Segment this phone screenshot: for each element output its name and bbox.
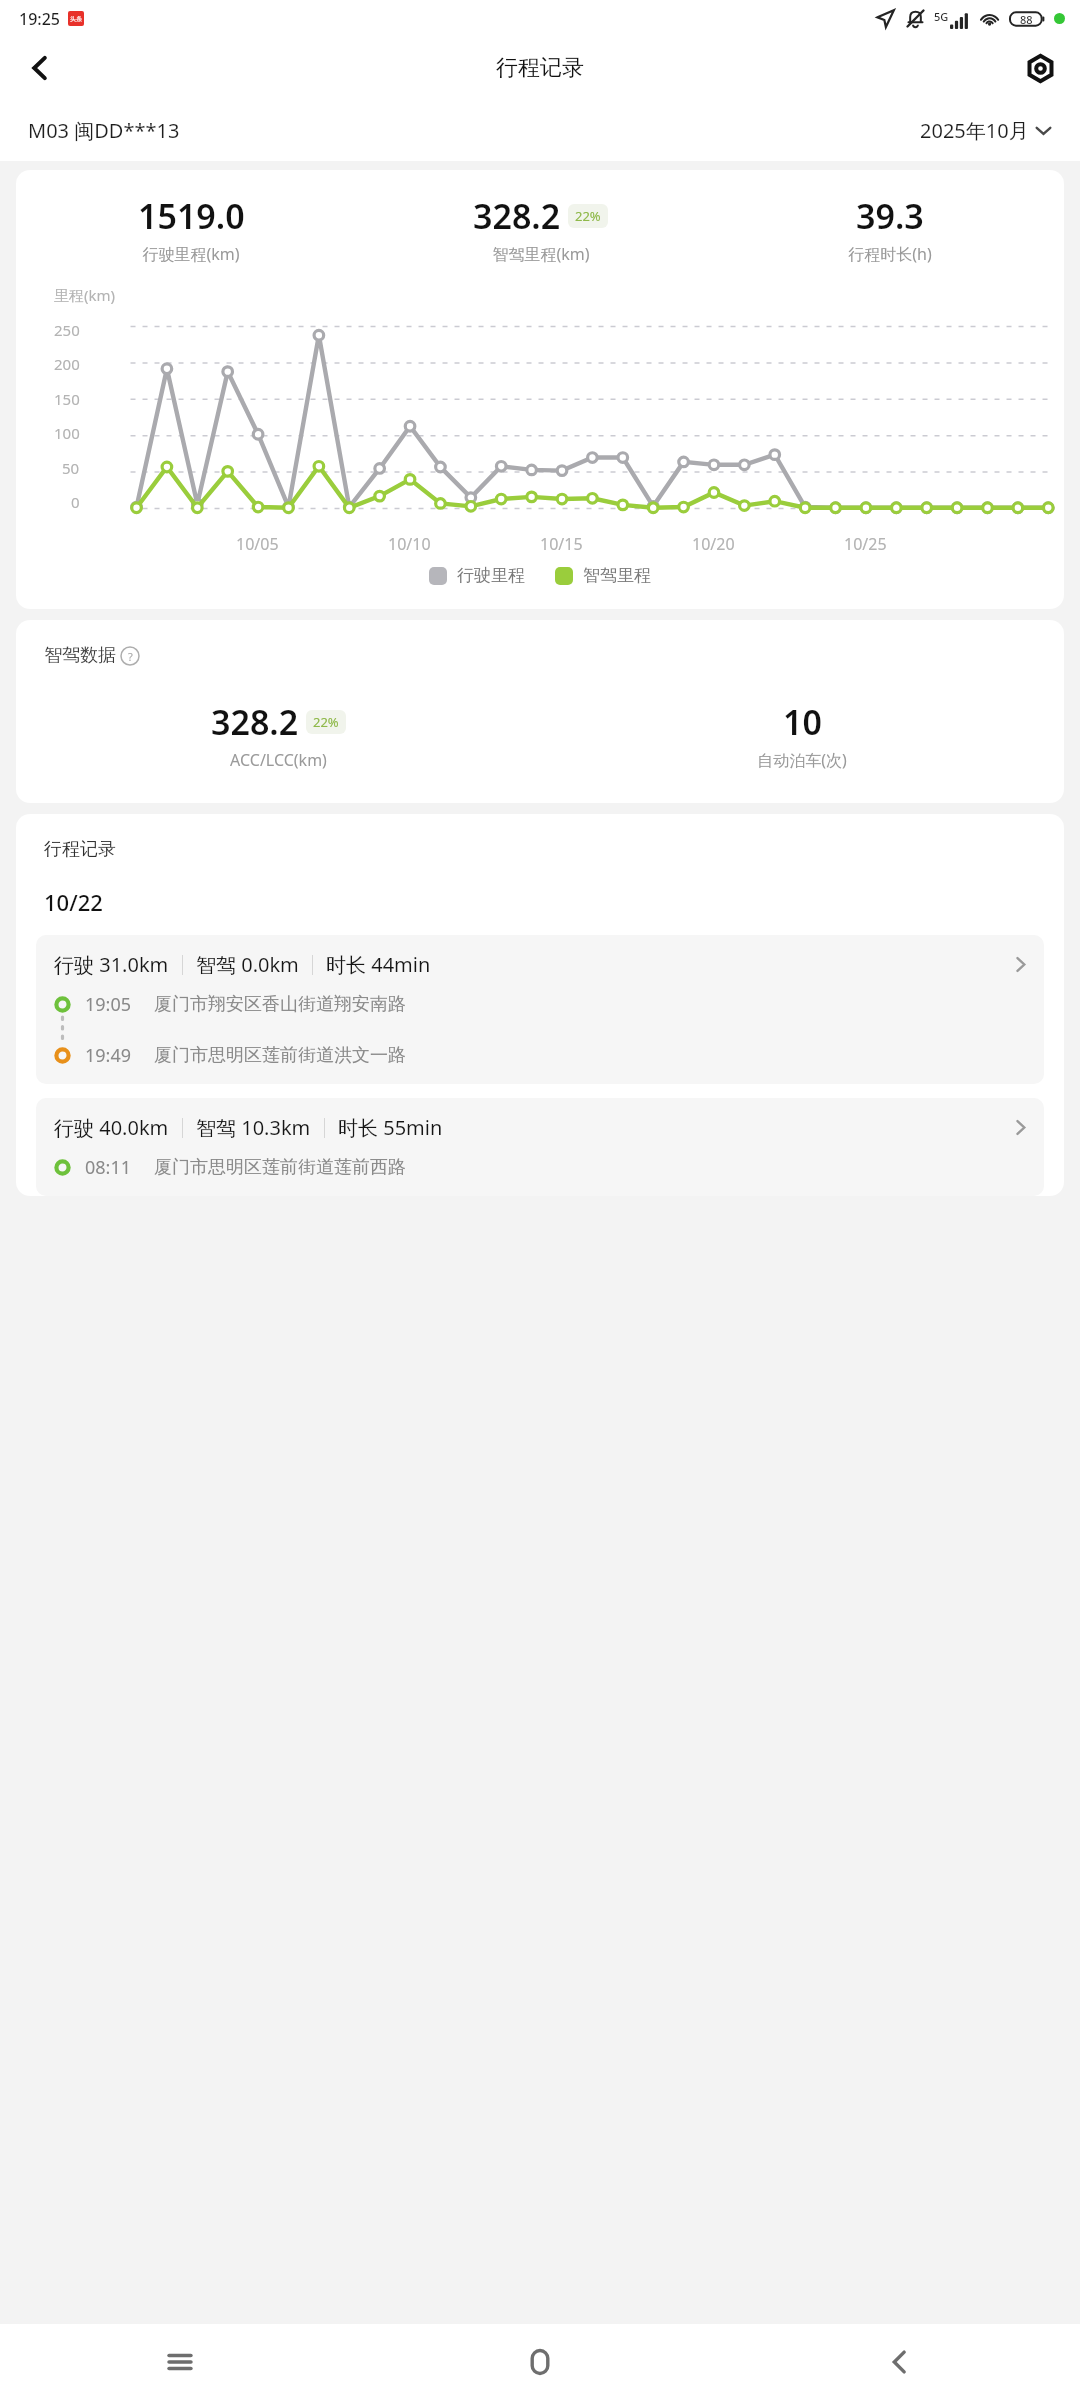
staticText: 08:11 [85,1155,132,1180]
staticText: 行驶 40.0km [54,1114,169,1141]
staticText: 行程记录 [44,838,116,861]
button[interactable]: Recent apps [0,2324,360,2400]
staticText: 22% [575,207,601,225]
staticText: 10/05 [236,533,279,555]
staticText: 50 [62,458,80,478]
button[interactable]: 行驶 31.0km [36,935,1044,1084]
staticText: 厦门市翔安区香山街道翔安南路 [154,993,406,1016]
staticText: 10/22 [44,887,103,917]
staticText: 5G [934,9,949,24]
staticText: 行程时长(h) [848,243,932,265]
staticText: 智驾里程 [583,565,651,586]
staticText: 0 [71,492,80,512]
staticText: 行驶里程 [457,565,525,586]
staticText: 10 [783,699,822,745]
staticText: M03 闽DD***13 [28,117,180,144]
staticText: 328.2 [211,699,299,745]
staticText: 19:05 [85,992,132,1017]
staticText: ACC/LCC(km) [230,749,327,771]
staticText: 厦门市思明区莲前街道莲前西路 [154,1156,406,1179]
staticText: 时长 55min [338,1114,443,1141]
staticText: 里程(km) [54,285,116,305]
staticText: 328.2 [473,193,561,239]
staticText: 智驾里程(km) [492,243,590,265]
staticText: 1519.0 [138,193,245,239]
staticText: 10/25 [844,533,887,555]
button[interactable]: Back [720,2324,1080,2400]
staticText: 10/20 [692,533,735,555]
staticText: 250 [54,320,80,340]
staticText: 10/10 [388,533,431,555]
staticText: 2025年10月 [920,117,1029,144]
staticText: 88 [1020,12,1033,27]
button[interactable]: 行驶 40.0km [36,1098,1044,1196]
button[interactable]: Home [360,2324,720,2400]
staticText: 时长 44min [326,951,431,978]
staticText: 150 [54,389,80,409]
staticText: 头条 [70,15,82,23]
staticText: 行驶里程(km) [142,243,240,265]
staticText: 19:25 [19,8,60,30]
staticText: ? [128,649,133,664]
staticText: 100 [54,423,80,443]
staticText: 行程记录 [496,54,584,82]
button[interactable]: Back [14,42,66,94]
staticText: 智驾 0.0km [196,951,299,978]
staticText: 19:49 [85,1043,132,1068]
button[interactable]: Settings [1014,42,1066,94]
staticText: 39.3 [856,193,924,239]
staticText: 22% [313,713,339,731]
staticText: 智驾 10.3km [196,1114,311,1141]
staticText: 200 [54,354,80,374]
staticText: 行驶 31.0km [54,951,169,978]
staticText: 10/15 [540,533,583,555]
staticText: 自动泊车(次) [757,749,847,771]
staticText: 智驾数据 [44,644,116,667]
button[interactable]: 2025年10月 [920,117,1052,144]
staticText: 厦门市思明区莲前街道洪文一路 [154,1044,406,1067]
button[interactable]: Help [120,646,140,666]
